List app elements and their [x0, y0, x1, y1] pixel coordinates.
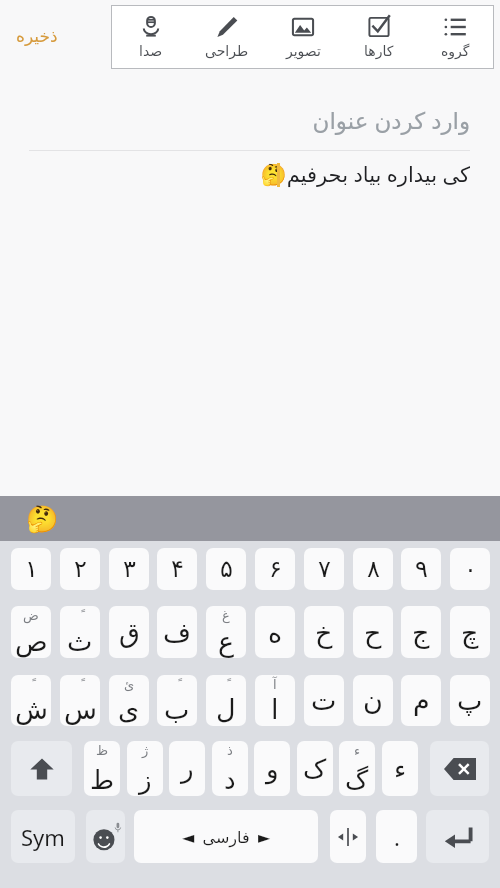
button[interactable]: ر — [169, 741, 205, 796]
staticText: ۶ — [269, 555, 282, 583]
button[interactable]: ۷ — [304, 548, 344, 590]
staticText: ۹ — [415, 555, 428, 583]
button[interactable]: پ — [450, 675, 490, 726]
staticText: غ — [222, 608, 230, 623]
button[interactable]: ظ — [84, 741, 120, 796]
staticText: کارها — [364, 43, 394, 59]
button[interactable]: . — [376, 810, 417, 863]
button[interactable]: ف — [157, 606, 197, 658]
button[interactable]: ت — [304, 675, 344, 726]
staticText: د — [224, 765, 236, 795]
button[interactable]: طراحی — [189, 6, 265, 68]
button[interactable]: ج — [401, 606, 441, 658]
button[interactable]: ً — [60, 675, 100, 726]
staticText: ۲ — [74, 555, 87, 583]
staticText: س — [64, 694, 97, 725]
staticText: ء — [354, 743, 361, 758]
button[interactable]: ۰ — [450, 548, 490, 590]
staticText: وارد کردن عنوان — [0, 104, 470, 135]
button[interactable]: ً — [60, 606, 100, 658]
staticText: طراحی — [205, 43, 249, 59]
staticText: ظ — [96, 743, 109, 758]
button[interactable]: تصویر — [265, 6, 341, 68]
button[interactable]: Enter — [426, 810, 489, 863]
staticText: صدا — [139, 43, 163, 59]
button[interactable]: ۹ — [401, 548, 441, 590]
staticText: م — [413, 685, 430, 716]
staticText: ص — [15, 626, 48, 657]
button[interactable]: ض — [11, 606, 51, 658]
staticText: . — [394, 822, 400, 852]
staticText: چ — [461, 617, 479, 648]
button[interactable]: Emoji — [86, 810, 125, 863]
button[interactable]: ء — [382, 741, 418, 796]
staticText: ۸ — [367, 555, 380, 583]
button[interactable]: ق — [109, 606, 149, 658]
button[interactable]: ۲ — [60, 548, 100, 590]
button[interactable]: ً — [11, 675, 51, 726]
staticText: ش — [15, 694, 48, 725]
staticText: ا — [271, 694, 279, 725]
button[interactable]: ن — [353, 675, 393, 726]
staticText: ژ — [142, 743, 149, 758]
button[interactable]: ۸ — [353, 548, 393, 590]
button[interactable]: آ — [255, 675, 295, 726]
button[interactable]: ۱ — [11, 548, 51, 590]
staticText: ب — [164, 694, 190, 725]
staticText: گروه — [441, 43, 470, 59]
staticText: ی — [118, 694, 140, 725]
staticText: و — [266, 754, 279, 784]
staticText: ن — [363, 685, 383, 716]
button[interactable]: ه — [255, 606, 295, 658]
button[interactable]: ک — [297, 741, 333, 796]
button[interactable]: صدا — [112, 6, 189, 68]
button[interactable]: ۵ — [206, 548, 246, 590]
button[interactable]: خ — [304, 606, 344, 658]
button[interactable]: ۶ — [255, 548, 295, 590]
button[interactable]: ذخیره — [16, 26, 58, 46]
button[interactable]: ئ — [109, 675, 149, 726]
button[interactable]: گروه — [417, 6, 493, 68]
button[interactable]: و — [254, 741, 290, 796]
staticText: ت — [311, 685, 337, 716]
staticText: ۷ — [318, 555, 331, 583]
button[interactable]: Move cursor — [330, 810, 366, 863]
button[interactable]: ء — [339, 741, 375, 796]
staticText: ک — [303, 754, 327, 784]
staticText: ض — [23, 608, 39, 623]
button[interactable]: ◄ فارسی ► — [134, 810, 318, 863]
staticText: تصویر — [286, 43, 321, 59]
staticText: ز — [139, 765, 152, 795]
staticText: آ — [273, 677, 277, 692]
button[interactable]: ح — [353, 606, 393, 658]
button[interactable]: ۴ — [157, 548, 197, 590]
staticText: ئ — [124, 677, 135, 692]
button[interactable]: م — [401, 675, 441, 726]
button[interactable]: Shift — [11, 741, 72, 796]
button[interactable]: چ — [450, 606, 490, 658]
button[interactable]: Sym — [11, 810, 75, 863]
staticText: ح — [364, 617, 382, 648]
staticText: پ — [457, 685, 483, 716]
staticText: ۴ — [171, 555, 184, 583]
staticText: ۱ — [25, 555, 38, 583]
button[interactable]: غ — [206, 606, 246, 658]
staticText: 🤔 — [26, 504, 59, 534]
staticText: ء — [394, 754, 407, 784]
staticText: Sym — [21, 822, 65, 852]
staticText: ۵ — [220, 555, 233, 583]
button[interactable]: کارها — [341, 6, 417, 68]
button[interactable]: ۳ — [109, 548, 149, 590]
staticText: ◄ فارسی ► — [182, 826, 271, 848]
staticText: ق — [119, 617, 140, 648]
staticText: ج — [412, 617, 430, 648]
staticText: ۰ — [464, 555, 477, 583]
staticText: خ — [315, 617, 333, 648]
button[interactable]: ً — [157, 675, 197, 726]
staticText: ذ — [227, 743, 233, 758]
button[interactable]: Backspace — [430, 741, 489, 796]
staticText: ع — [218, 626, 235, 657]
button[interactable]: ژ — [127, 741, 163, 796]
button[interactable]: ً — [206, 675, 246, 726]
button[interactable]: ذ — [212, 741, 248, 796]
